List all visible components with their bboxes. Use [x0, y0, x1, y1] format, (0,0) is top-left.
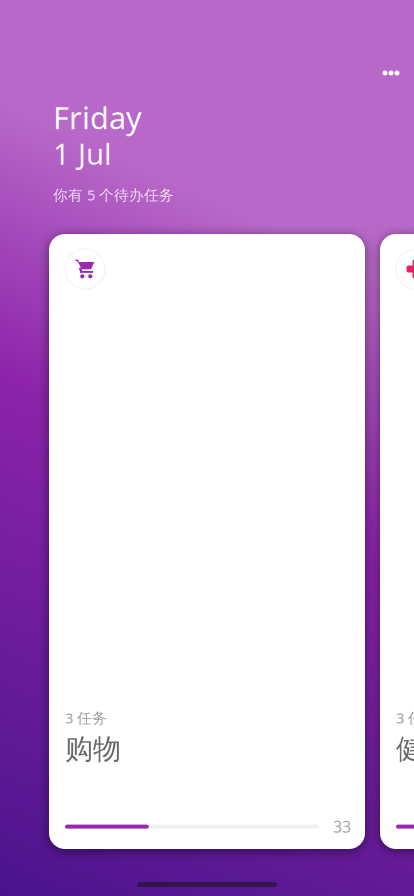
staticText: 1 Jul [53, 134, 112, 173]
staticText: 购物 [65, 732, 121, 766]
button[interactable]: More options [369, 51, 413, 95]
staticText: 你有 5 个待办任务 [53, 185, 174, 204]
button[interactable]: 3 任务 [49, 234, 365, 849]
staticText: 健康 [396, 732, 414, 766]
button[interactable]: 3 任务 [380, 234, 414, 849]
staticText: 3 任务 [65, 708, 107, 727]
staticText: 33 [333, 816, 351, 837]
staticText: 3 任务 [396, 708, 414, 727]
staticText: Friday [53, 97, 142, 138]
